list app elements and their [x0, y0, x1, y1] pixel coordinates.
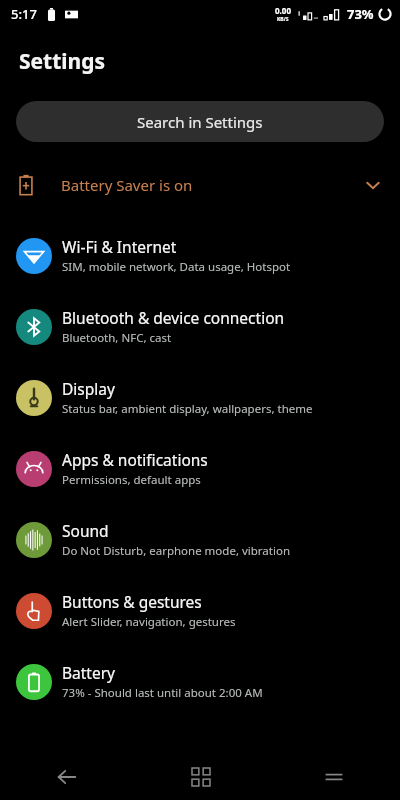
staticText: 5:17: [11, 5, 37, 23]
staticText: 73%: [347, 5, 374, 23]
staticText: 0.00: [275, 5, 291, 16]
staticText: Battery Saver is on: [61, 175, 193, 195]
staticText: Buttons & gestures: [62, 591, 202, 612]
button[interactable]: Search in Settings: [16, 101, 384, 142]
button[interactable]: Home: [134, 754, 267, 800]
staticText: KB/S: [277, 16, 289, 23]
button[interactable]: Battery: [0, 646, 400, 717]
button[interactable]: Sound: [0, 504, 400, 575]
staticText: SIM, mobile network, Data usage, Hotspot: [62, 259, 291, 275]
staticText: Battery: [62, 662, 116, 683]
button[interactable]: Display: [0, 362, 400, 433]
button[interactable]: Battery Saver is on: [0, 163, 400, 207]
staticText: Apps & notifications: [62, 449, 208, 470]
staticText: Status bar, ambient display, wallpapers,…: [62, 401, 313, 417]
staticText: Bluetooth & device connection: [62, 307, 285, 328]
staticText: Display: [62, 378, 115, 399]
button[interactable]: Recents: [267, 754, 400, 800]
button[interactable]: Wi-Fi & Internet: [0, 220, 400, 291]
button[interactable]: Buttons & gestures: [0, 575, 400, 646]
staticText: Search in Settings: [137, 112, 263, 132]
staticText: Permissions, default apps: [62, 472, 201, 488]
button[interactable]: Apps & notifications: [0, 433, 400, 504]
button[interactable]: Back: [0, 754, 134, 800]
staticText: Wi-Fi & Internet: [62, 236, 177, 257]
staticText: Settings: [19, 47, 106, 76]
staticText: 73% - Should last until about 2:00 AM: [62, 685, 263, 701]
staticText: Alert Slider, navigation, gestures: [62, 614, 236, 630]
button[interactable]: Bluetooth & device connection: [0, 291, 400, 362]
staticText: Do Not Disturb, earphone mode, vibration: [62, 543, 290, 559]
staticText: Bluetooth, NFC, cast: [62, 330, 172, 346]
staticText: Sound: [62, 520, 109, 541]
